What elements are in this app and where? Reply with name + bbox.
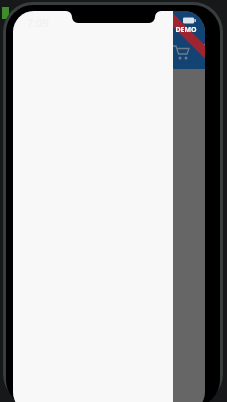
button[interactable]: Cart — [168, 39, 194, 65]
staticText: DEMO — [175, 25, 197, 35]
button[interactable]: Search — [195, 39, 205, 65]
other: Status icons — [161, 13, 205, 27]
button[interactable]: 7:09 — [13, 11, 173, 402]
